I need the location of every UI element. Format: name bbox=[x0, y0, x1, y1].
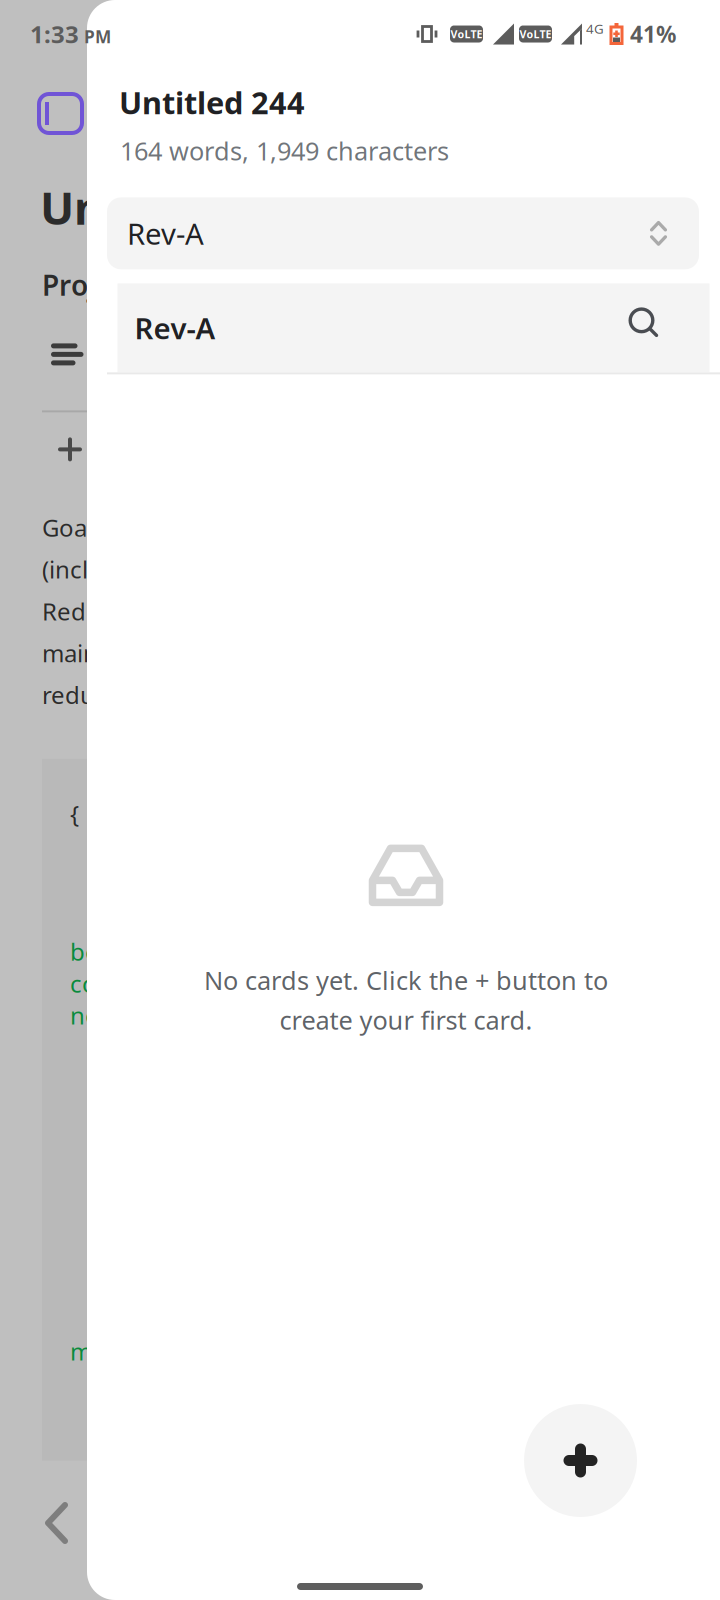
button[interactable]: Rev-A bbox=[107, 197, 699, 269]
staticText: 4G bbox=[586, 20, 604, 37]
staticText: PM bbox=[84, 25, 111, 48]
staticText: Reduce the bbox=[42, 595, 171, 627]
staticText: No cards yet. Click the + button to bbox=[204, 963, 608, 997]
staticText: Rev-A bbox=[134, 308, 215, 347]
staticText: create your first card. bbox=[279, 1003, 532, 1037]
button[interactable]: Rev-A bbox=[107, 283, 720, 374]
staticText: no bbox=[70, 999, 100, 1031]
staticText: maintain bbox=[42, 637, 141, 669]
staticText: 164 words, 1,949 characters bbox=[120, 134, 449, 167]
staticText: Project notes bbox=[42, 266, 220, 303]
staticText: VoLTE bbox=[519, 27, 551, 41]
button[interactable]: Add card bbox=[524, 1404, 637, 1517]
staticText: be bbox=[70, 936, 99, 967]
staticText: Untitled 244 bbox=[40, 177, 300, 237]
staticText: 41% bbox=[630, 19, 676, 49]
staticText: reduce bbox=[42, 679, 121, 711]
staticText: { bbox=[70, 798, 79, 830]
staticText: m bbox=[70, 1335, 92, 1367]
staticText: co bbox=[70, 967, 97, 999]
staticText: Goals and bbox=[42, 511, 153, 543]
staticText: 1:33 bbox=[30, 18, 79, 50]
staticText: Untitled 244 bbox=[119, 82, 305, 123]
staticText: VoLTE bbox=[450, 27, 482, 41]
staticText: (including bbox=[42, 553, 154, 585]
staticText: Rev-A bbox=[127, 214, 204, 253]
